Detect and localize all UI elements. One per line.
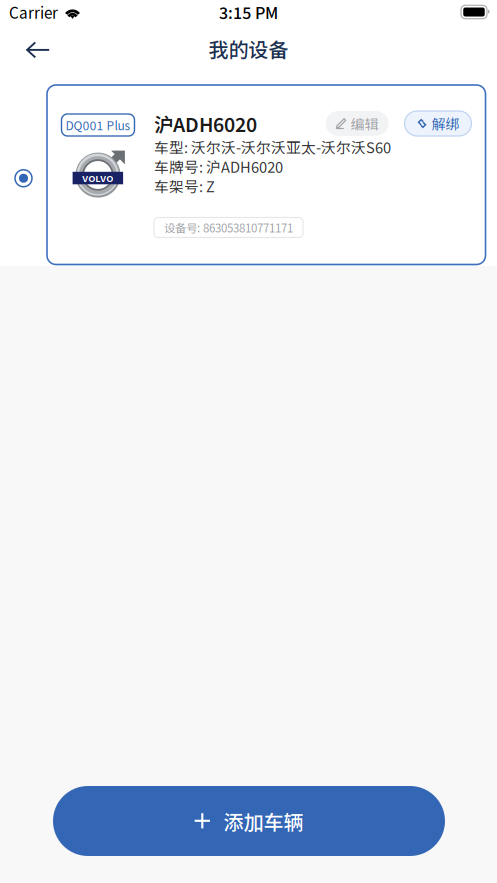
staticText: DQ001 Plus (65, 116, 130, 134)
button[interactable]: Select vehicle (0, 85, 47, 264)
staticText: 车牌号: 沪ADH6020 (154, 156, 283, 177)
staticText: 解绑 (431, 113, 459, 134)
staticText: 沪ADH6020 (154, 109, 257, 137)
button[interactable]: 编辑 (325, 111, 388, 136)
staticText: 车架号: Z (154, 175, 215, 196)
staticText: Carrier (9, 1, 58, 23)
staticText: 设备号: 863053810771171 (164, 219, 293, 236)
button[interactable]: 解绑 (404, 111, 471, 136)
staticText: 我的设备 (208, 34, 288, 63)
staticText: 添加车辆 (223, 806, 303, 835)
staticText: 编辑 (350, 113, 378, 134)
staticText: VOLVO (82, 171, 113, 185)
button[interactable]: Back (13, 20, 63, 72)
staticText: 3:15 PM (219, 0, 278, 24)
staticText: 车型: 沃尔沃-沃尔沃亚太-沃尔沃S60 (154, 136, 391, 157)
button[interactable]: DQ001 Plus (47, 85, 485, 264)
button[interactable]: 添加车辆 (53, 786, 445, 856)
